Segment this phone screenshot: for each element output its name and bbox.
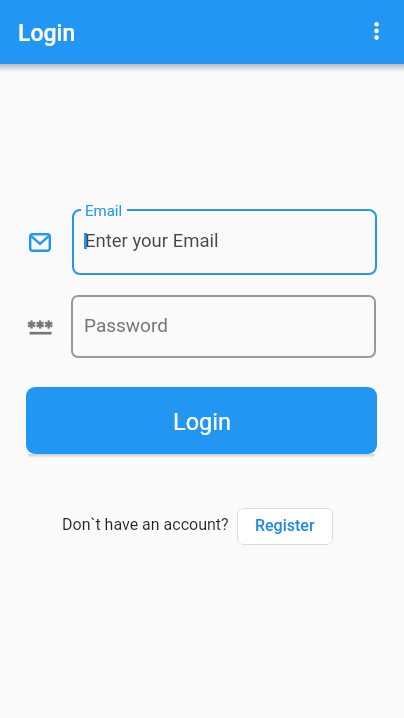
button[interactable]: Register — [237, 508, 333, 545]
button[interactable]: Login — [26, 387, 377, 454]
staticText: Enter your Email — [85, 230, 219, 252]
staticText: Login — [173, 408, 231, 436]
staticText: Email — [85, 202, 123, 220]
staticText: Don`t have an account? — [62, 515, 229, 534]
button[interactable] — [71, 295, 376, 358]
staticText: Register — [255, 516, 315, 535]
staticText: Login — [18, 20, 76, 47]
staticText: Password — [84, 314, 168, 336]
button[interactable] — [365, 19, 389, 43]
button[interactable] — [72, 209, 377, 275]
